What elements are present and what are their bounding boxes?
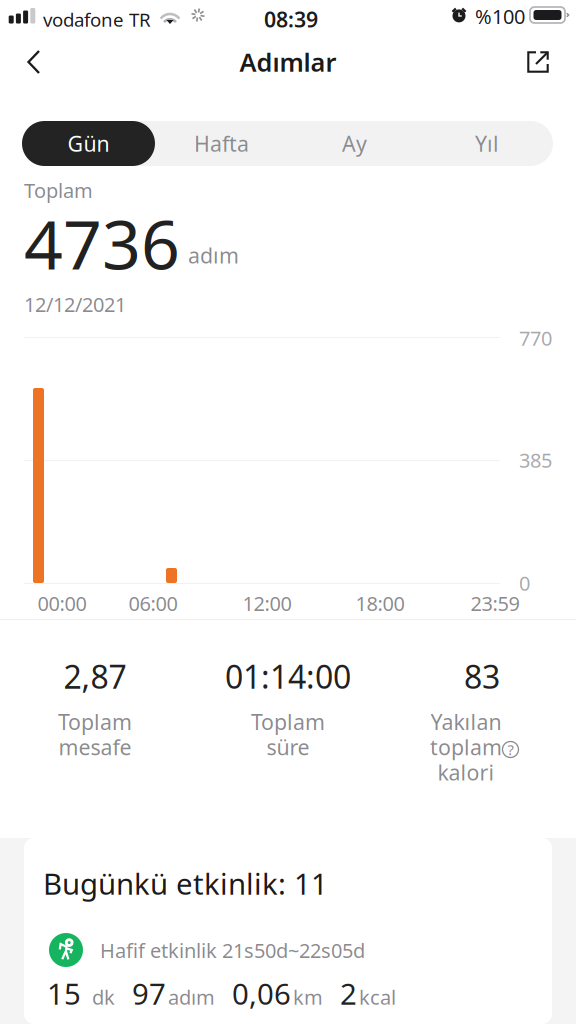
staticText: 4736 (24, 198, 180, 288)
staticText: 12:00 (242, 590, 291, 617)
staticText: 770 (519, 325, 552, 351)
staticText: 06:00 (128, 590, 177, 617)
staticText: 18:00 (355, 590, 404, 617)
staticText: ? (507, 740, 513, 759)
staticText: Toplam (24, 177, 93, 204)
staticText: %100 (475, 3, 525, 30)
staticText: Toplam (58, 707, 132, 736)
staticText: Hafta (194, 129, 249, 158)
staticText: Bugünkü etkinlik: 11 (43, 864, 328, 903)
staticText: vodafone TR (43, 7, 151, 32)
staticText: 01:14:00 (225, 655, 351, 697)
staticText: Gün (67, 129, 109, 158)
staticText: Toplam (251, 707, 325, 736)
staticText: 385 (519, 447, 552, 473)
button[interactable]: Ay (288, 121, 421, 166)
button[interactable]: Kalori bilgisi (502, 741, 519, 758)
staticText: 00:00 (37, 590, 86, 617)
staticText: 97 (132, 974, 166, 1013)
staticText: 2,87 (63, 655, 126, 697)
staticText: adım (188, 241, 239, 269)
staticText: mesafe (58, 733, 131, 761)
staticText: toplam (430, 733, 502, 761)
staticText: 0,06 (232, 974, 291, 1013)
button[interactable]: Gün (22, 121, 155, 166)
button[interactable]: Back (12, 40, 56, 84)
staticText: Hafif etkinlik 21s50d~22s05d (100, 937, 365, 964)
staticText: kalori (437, 758, 494, 786)
staticText: dk (92, 984, 115, 1010)
button[interactable]: Share (516, 40, 560, 84)
staticText: 2 (340, 974, 357, 1013)
staticText: Yıl (475, 129, 499, 158)
button[interactable]: Hafta (155, 121, 288, 166)
staticText: Yakılan (430, 707, 501, 736)
staticText: 15 (47, 974, 81, 1013)
staticText: Adımlar (239, 45, 336, 79)
button[interactable]: Yıl (421, 121, 553, 166)
staticText: 12/12/2021 (24, 291, 126, 318)
staticText: Ay (342, 129, 367, 158)
staticText: 0 (519, 570, 530, 596)
staticText: 08:39 (264, 5, 318, 33)
staticText: km (293, 984, 323, 1010)
staticText: kcal (359, 984, 396, 1010)
staticText: adım (168, 984, 215, 1010)
staticText: 23:59 (470, 590, 519, 617)
staticText: süre (266, 733, 309, 761)
staticText: 83 (464, 655, 500, 697)
